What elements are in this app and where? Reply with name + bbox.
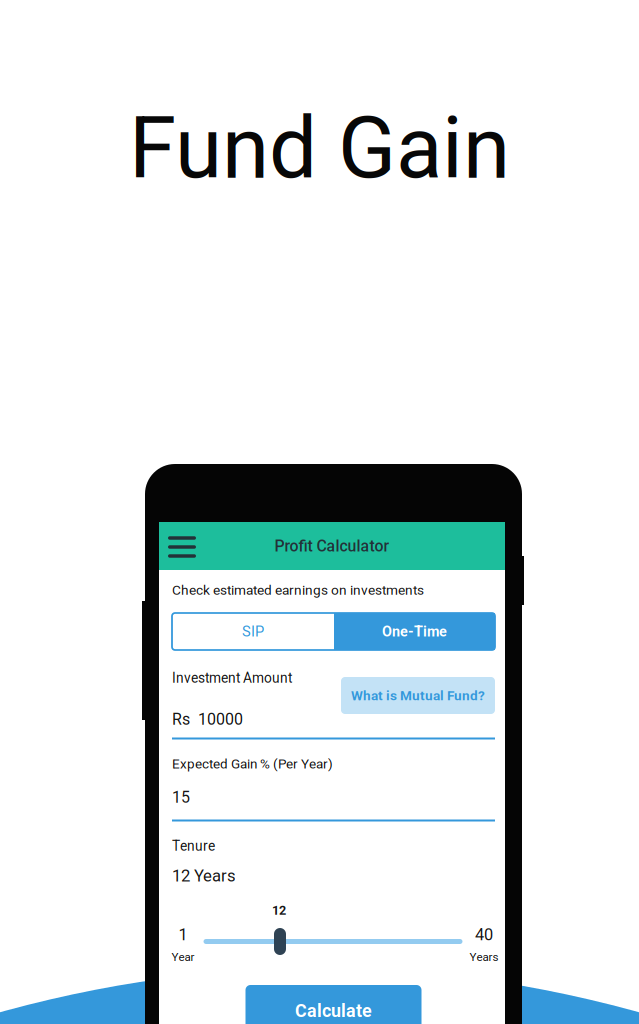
- staticText: SIP: [242, 623, 264, 640]
- staticText: Calculate: [295, 1000, 372, 1021]
- staticText: Rs 10000: [172, 710, 243, 729]
- staticText: 1: [178, 925, 187, 944]
- staticText: Expected Gain % (Per Year): [172, 756, 333, 772]
- button[interactable]: Menu: [159, 522, 217, 570]
- button[interactable]: Calculate: [245, 985, 421, 1024]
- staticText: Year: [171, 950, 194, 964]
- staticText: Investment Amount: [172, 670, 292, 686]
- button[interactable]: One-Time: [334, 613, 495, 650]
- staticText: Fund Gain: [129, 98, 510, 198]
- staticText: 15: [172, 788, 190, 807]
- staticText: What is Mutual Fund?: [351, 687, 485, 703]
- staticText: Check estimated earnings on investments: [172, 582, 424, 598]
- button[interactable]: What is Mutual Fund?: [341, 677, 495, 714]
- button[interactable]: SIP: [172, 613, 334, 650]
- staticText: Tenure: [172, 838, 215, 854]
- staticText: 12: [272, 903, 286, 918]
- staticText: Profit Calculator: [274, 537, 389, 555]
- staticText: 40: [475, 925, 493, 944]
- staticText: One-Time: [382, 623, 447, 640]
- staticText: Years: [469, 950, 498, 964]
- staticText: 12 Years: [172, 866, 236, 885]
